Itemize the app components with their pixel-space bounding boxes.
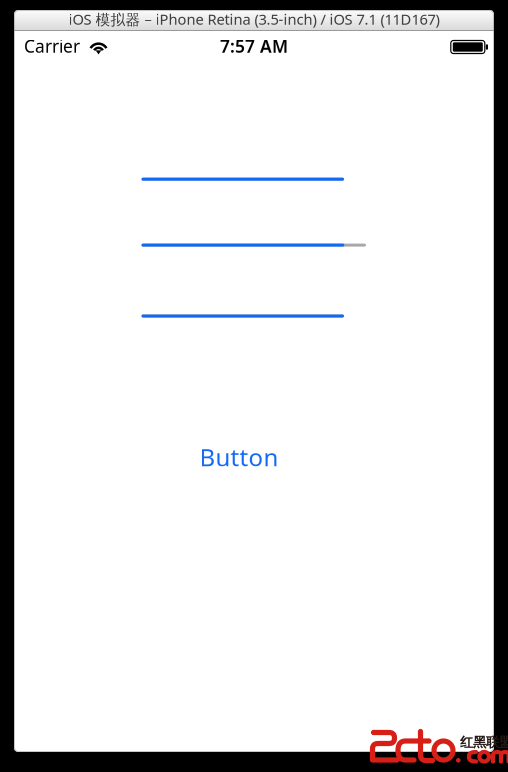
staticText: 7:57 AM: [220, 34, 288, 57]
staticText: Carrier: [24, 34, 80, 57]
button[interactable]: Button: [174, 442, 304, 472]
staticText: iOS 模拟器 – iPhone Retina (3.5-inch) / iOS…: [68, 9, 439, 29]
staticText: Button: [199, 441, 278, 473]
staticText: 红黑联盟: [460, 734, 508, 750]
